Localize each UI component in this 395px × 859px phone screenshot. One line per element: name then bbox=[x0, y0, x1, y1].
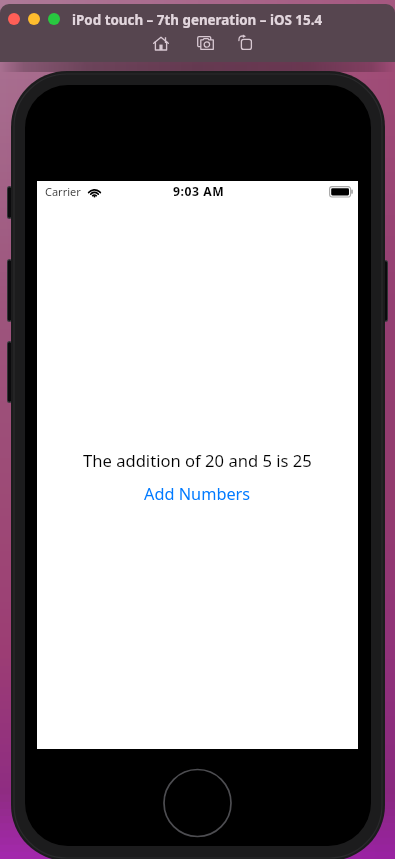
button[interactable]: Minimize bbox=[28, 13, 40, 25]
button[interactable]: Add Numbers bbox=[144, 483, 251, 505]
button[interactable]: Close bbox=[8, 13, 20, 25]
staticText: 9:03 AM bbox=[173, 183, 225, 200]
button[interactable]: Rotate bbox=[224, 29, 266, 55]
staticText: iPod touch – 7th generation – iOS 15.4 bbox=[72, 11, 323, 29]
button[interactable]: Home bbox=[140, 30, 182, 56]
staticText: The addition of 20 and 5 is 25 bbox=[83, 449, 312, 472]
staticText: Add Numbers bbox=[144, 483, 251, 505]
button[interactable]: Zoom bbox=[48, 13, 60, 25]
button[interactable]: Screenshot bbox=[184, 30, 226, 56]
staticText: Carrier bbox=[45, 184, 81, 199]
